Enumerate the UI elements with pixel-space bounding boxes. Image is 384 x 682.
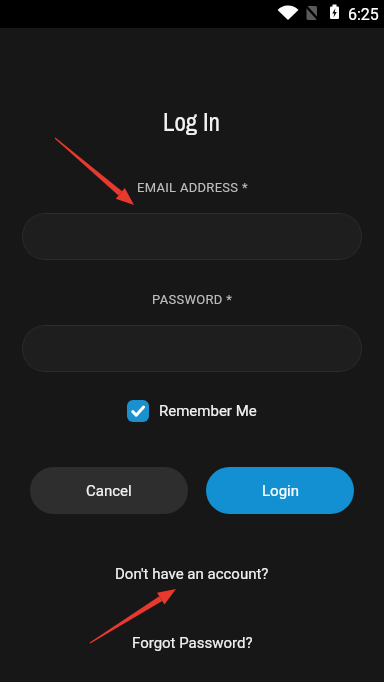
staticText: Forgot Password? — [132, 634, 253, 652]
staticText: Login — [262, 482, 299, 500]
staticText: 6:25 — [348, 5, 379, 24]
button[interactable]: Cancel — [30, 467, 188, 514]
button[interactable]: Remember Me — [127, 400, 257, 422]
staticText: EMAIL ADDRESS * — [137, 180, 248, 195]
staticText: Log In — [163, 105, 221, 138]
staticText: Remember Me — [159, 402, 257, 420]
staticText: Cancel — [86, 482, 132, 500]
staticText: PASSWORD * — [152, 292, 233, 307]
staticText: Don't have an account? — [115, 565, 269, 583]
button[interactable]: Don't have an account? — [115, 564, 269, 584]
button[interactable]: Forgot Password? — [132, 633, 253, 653]
button[interactable]: Login — [206, 467, 354, 514]
